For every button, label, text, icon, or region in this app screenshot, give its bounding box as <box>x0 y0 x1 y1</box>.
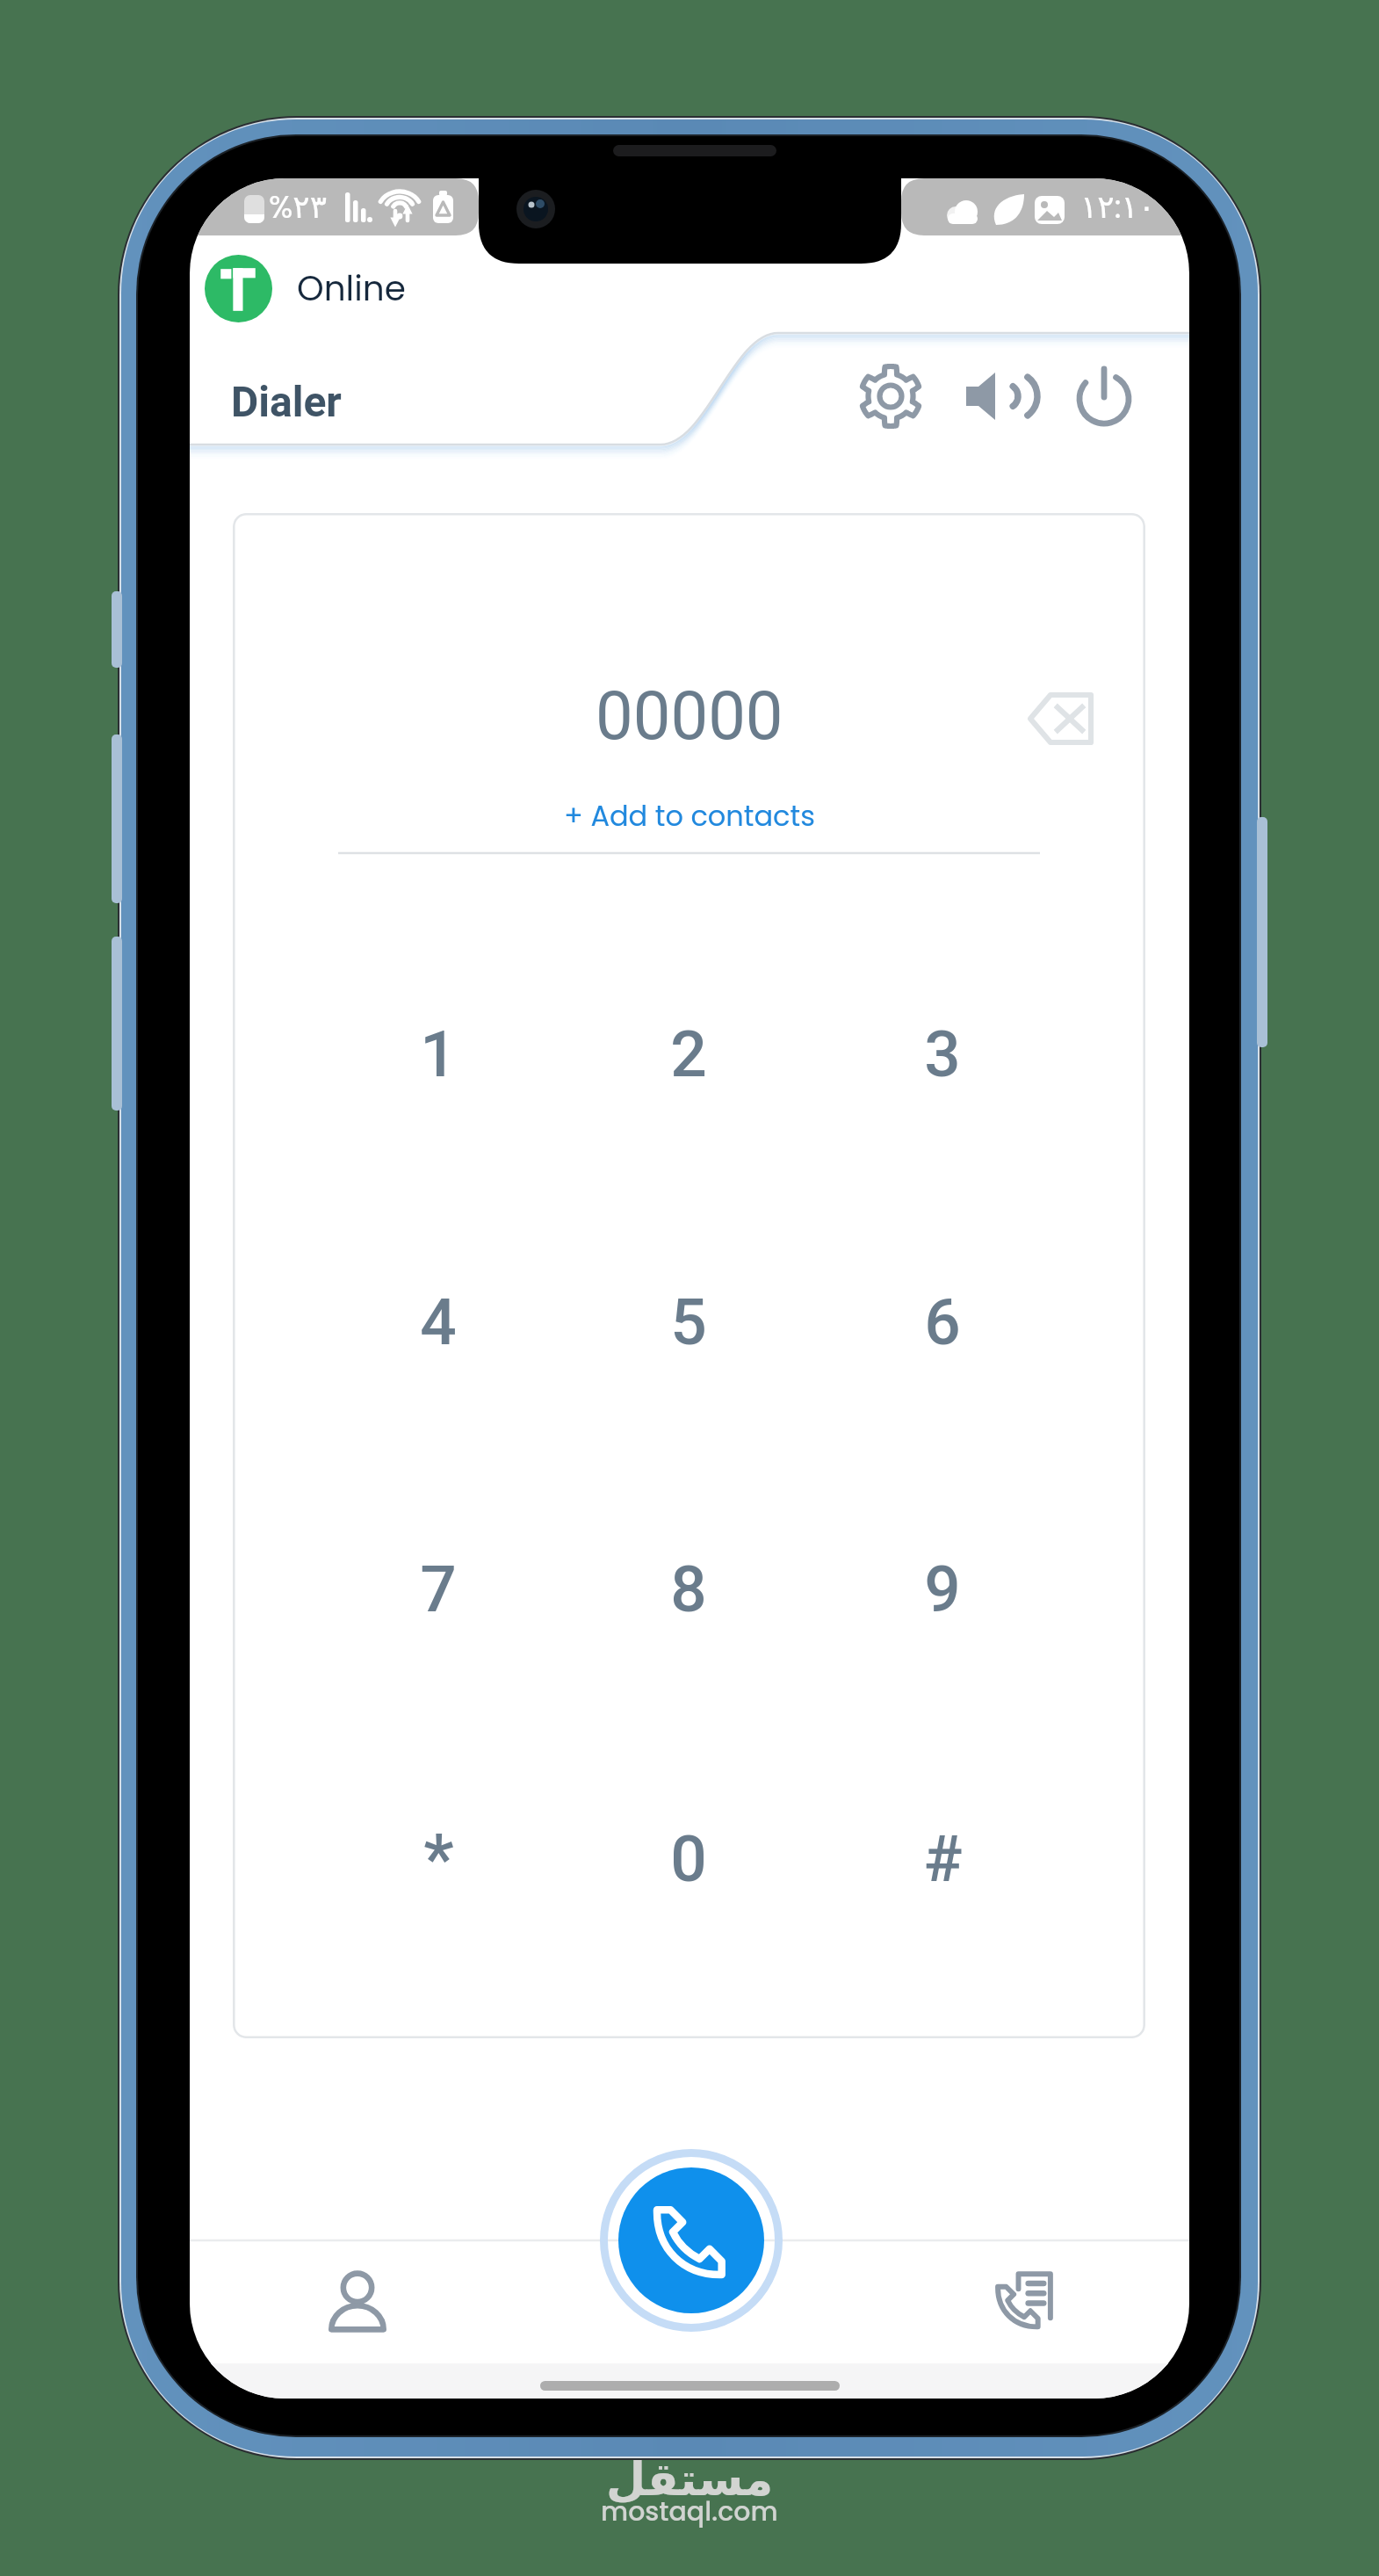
button[interactable]: 4 <box>342 1256 535 1388</box>
button[interactable]: 9 <box>846 1523 1039 1655</box>
staticText: 7 <box>420 1552 457 1627</box>
staticText: 2 <box>670 1017 707 1092</box>
button[interactable]: 8 <box>592 1523 785 1655</box>
button[interactable]: Contacts <box>296 2240 419 2363</box>
staticText: 0 <box>670 1821 707 1897</box>
staticText: 5 <box>670 1284 707 1360</box>
button[interactable]: Settings <box>850 356 931 437</box>
button[interactable]: Dialer <box>229 372 343 431</box>
button[interactable]: 5 <box>592 1256 785 1388</box>
button[interactable]: 7 <box>342 1523 535 1655</box>
staticText: 3 <box>924 1017 961 1092</box>
staticText: + Add to contacts <box>564 796 815 836</box>
staticText: Dialer <box>231 377 342 426</box>
staticText: %٢٣ <box>269 185 327 228</box>
staticText: * <box>423 1820 454 1899</box>
button[interactable]: Online <box>190 242 1189 335</box>
staticText: ١٢‎:‎١٠ <box>1080 185 1156 228</box>
button[interactable]: * <box>342 1793 535 1925</box>
staticText: 6 <box>924 1284 961 1360</box>
button[interactable]: + Add to contacts <box>552 791 827 841</box>
staticText: 8 <box>670 1552 707 1627</box>
staticText: # <box>923 1821 963 1897</box>
staticText: Online <box>297 264 406 313</box>
button[interactable]: # <box>846 1793 1039 1925</box>
staticText: mostaql.com <box>601 2493 778 2530</box>
button[interactable]: 2 <box>592 988 785 1120</box>
button[interactable]: Speaker <box>957 356 1037 437</box>
staticText: 9 <box>924 1552 961 1627</box>
staticText: 00000 <box>596 677 783 755</box>
button[interactable]: 3 <box>846 988 1039 1120</box>
staticText: 1 <box>420 1017 457 1092</box>
button[interactable]: Power <box>1064 356 1144 437</box>
button[interactable]: Backspace <box>1022 679 1101 758</box>
button[interactable]: Call <box>595 2144 788 2337</box>
button[interactable]: 0 <box>592 1793 785 1925</box>
button[interactable]: 1 <box>342 988 535 1120</box>
staticText: 4 <box>420 1284 457 1360</box>
staticText: مستقل <box>606 2453 774 2507</box>
button[interactable]: Call log <box>960 2240 1083 2363</box>
button[interactable]: 6 <box>846 1256 1039 1388</box>
